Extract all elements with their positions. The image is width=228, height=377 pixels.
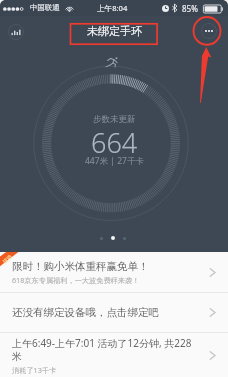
staticText: 618京东专属福利，一大波免费秤来袭！ [12,275,140,285]
staticText: 活动 [1,253,13,265]
staticText: 限时！购小米体重秤赢免单！ [12,260,149,273]
staticText: 上午6:49-上午7:01 活动了12分钟, 共228米 [12,336,197,363]
staticText: 447米 | 27千卡 [85,155,144,167]
button[interactable]: 上午6:49-上午7:01 活动了12分钟, 共228米 [0,333,228,377]
staticText: 未绑定手环 [87,24,142,38]
button[interactable]: 还没有绑定设备哦，点击绑定吧 [0,293,228,332]
staticText: 消耗了13千卡 [12,365,57,375]
button[interactable]: 活动 [0,252,228,292]
staticText: 85% [182,3,198,14]
staticText: 中国联通 [30,3,60,12]
button[interactable]: Statistics [8,24,24,40]
staticText: 上午8:04 [97,3,128,13]
button[interactable]: More options [201,23,217,39]
staticText: 还没有绑定设备哦，点击绑定吧 [12,306,159,319]
staticText: 步数未更新 [93,114,136,125]
staticText: 664 [91,124,138,161]
